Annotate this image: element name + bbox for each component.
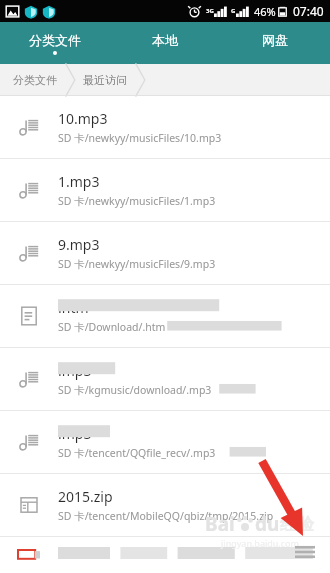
button[interactable]: 9.mp3 <box>0 222 330 284</box>
staticText: 1.mp3 <box>58 172 100 191</box>
staticText: 2015.zip <box>58 487 113 506</box>
staticText: 46% <box>254 4 276 19</box>
button[interactable]: Menu <box>290 537 320 567</box>
staticText: 10.mp3 <box>58 109 108 128</box>
staticText: SD 卡/Download/.htm <box>58 320 166 334</box>
button[interactable]: .mp3 <box>0 411 330 473</box>
staticText: SD 卡/newkyy/musicFiles/10.mp3 <box>58 131 222 145</box>
staticText: 网盘 <box>262 32 288 48</box>
button[interactable]: 网盘 <box>220 22 330 64</box>
button[interactable]: 2015.zip <box>0 474 330 536</box>
staticText: SD 卡/tencent/QQfile_recv/.mp3 <box>58 446 216 460</box>
staticText: 9.mp3 <box>58 235 100 254</box>
staticText: SD 卡/tencent/MobileQQ/qbiz/tmp/2015.zip <box>58 509 274 523</box>
staticText: 07:40 <box>293 3 324 19</box>
staticText: 最近访问 <box>83 73 127 87</box>
staticText: G <box>231 7 236 15</box>
button[interactable] <box>0 537 330 571</box>
button[interactable]: 10.mp3 <box>0 96 330 158</box>
staticText: .htm <box>58 298 89 317</box>
button[interactable]: 本地 <box>110 22 220 64</box>
button[interactable]: 1.mp3 <box>0 159 330 221</box>
staticText: 本地 <box>152 32 178 48</box>
staticText: jingyan.baidu.com <box>221 537 299 549</box>
button[interactable]: .htm <box>0 285 330 347</box>
staticText: SD 卡/newkyy/musicFiles/1.mp3 <box>58 194 216 208</box>
staticText: .mp3 <box>58 424 92 443</box>
staticText: .mp3 <box>58 361 92 380</box>
staticText: Bai <box>205 511 235 537</box>
staticText: 3G <box>206 7 214 15</box>
button[interactable]: 最近访问 <box>81 67 129 93</box>
button[interactable]: .mp3 <box>0 348 330 410</box>
button[interactable]: 分类文件 <box>11 67 59 93</box>
staticText: 经验 <box>280 514 314 535</box>
staticText: SD 卡/kgmusic/download/.mp3 <box>58 383 212 397</box>
button[interactable]: 分类文件 <box>0 22 110 64</box>
staticText: 分类文件 <box>29 32 81 48</box>
staticText: du <box>255 511 280 537</box>
staticText: 分类文件 <box>13 73 57 87</box>
staticText: SD 卡/newkyy/musicFiles/9.mp3 <box>58 257 216 271</box>
